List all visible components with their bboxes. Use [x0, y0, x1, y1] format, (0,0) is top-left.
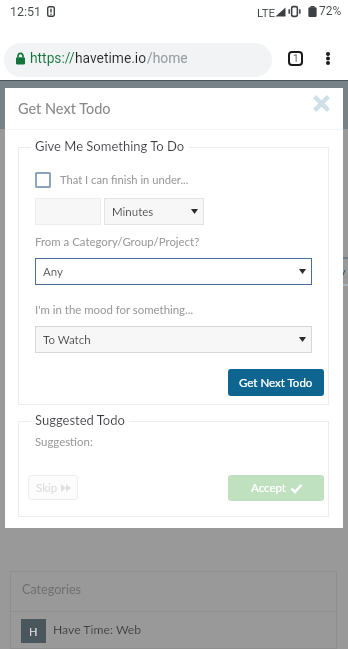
staticText: From a Category/Group/Project? — [35, 235, 200, 249]
staticText: Minutes — [112, 205, 154, 219]
staticText: y — [339, 264, 346, 280]
button[interactable]: Accept — [228, 475, 324, 501]
staticText: To Watch — [43, 333, 91, 347]
staticText: H — [29, 625, 38, 638]
button[interactable]: https:// — [4, 43, 272, 77]
staticText: Suggestion: — [35, 435, 93, 449]
staticText: I'm in the mood for something... — [35, 303, 194, 317]
staticText: LTE — [257, 6, 276, 19]
button[interactable]: Skip — [28, 475, 78, 500]
button[interactable]: Switch tabs — [283, 46, 307, 70]
button[interactable]: More options — [316, 46, 340, 70]
button[interactable] — [35, 198, 101, 225]
staticText: Suggested Todo — [35, 412, 125, 428]
button[interactable]: Categories — [10, 571, 337, 649]
button[interactable]: Any — [35, 258, 312, 285]
staticText: /home — [147, 50, 188, 66]
staticText: Get Next Todo — [239, 376, 313, 390]
staticText: Give Me Something To Do — [35, 138, 185, 154]
staticText: Any — [43, 265, 63, 279]
staticText: 72% — [319, 4, 342, 18]
staticText: Have Time: Web — [53, 622, 142, 637]
button[interactable]: Minutes — [104, 198, 204, 225]
staticText: https:// — [30, 50, 75, 66]
staticText: 1 — [293, 53, 299, 65]
button[interactable]: That I can finish in under... — [35, 171, 189, 188]
staticText: 12:51 — [10, 4, 42, 19]
staticText: havetime.io — [75, 50, 147, 66]
button[interactable]: To Watch — [35, 326, 312, 353]
staticText: Get Next Todo — [18, 100, 111, 117]
staticText: Accept — [251, 481, 286, 495]
staticText: That I can finish in under... — [60, 173, 189, 186]
staticText: Categories — [22, 582, 82, 597]
staticText: Skip — [36, 481, 58, 495]
button[interactable]: Get Next Todo — [228, 369, 324, 396]
button[interactable]: Close — [306, 88, 336, 118]
